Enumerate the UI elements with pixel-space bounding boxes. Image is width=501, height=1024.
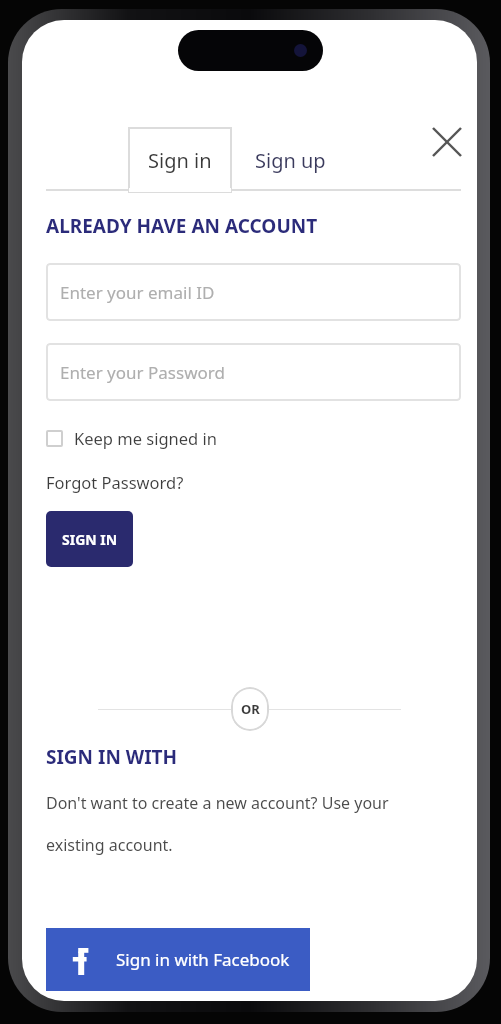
staticText: Sign in [148, 147, 212, 174]
staticText: Keep me signed in [74, 427, 217, 449]
button[interactable]: Sign in with Facebook [46, 928, 310, 991]
staticText: OR [241, 700, 260, 718]
staticText: ALREADY HAVE AN ACCOUNT [46, 213, 318, 239]
staticText: Enter your Password [60, 361, 225, 384]
staticText: SIGN IN WITH [46, 744, 178, 770]
button[interactable]: Close [424, 119, 470, 165]
staticText: Enter your email ID [60, 281, 215, 304]
button[interactable]: SIGN IN [46, 511, 133, 567]
button[interactable]: Forgot Password? [46, 471, 184, 493]
staticText: Don't want to create a new account? Use … [46, 792, 449, 856]
button[interactable]: Sign up [240, 127, 340, 193]
staticText: Forgot Password? [46, 471, 184, 493]
button[interactable]: Keep me signed in [46, 425, 217, 451]
button[interactable]: Enter your email ID [46, 263, 461, 321]
button[interactable]: Enter your Password [46, 343, 461, 401]
button[interactable]: Sign in [128, 127, 232, 193]
staticText: SIGN IN [62, 530, 118, 549]
staticText: Sign in with Facebook [116, 948, 290, 971]
staticText: Sign up [255, 147, 326, 174]
